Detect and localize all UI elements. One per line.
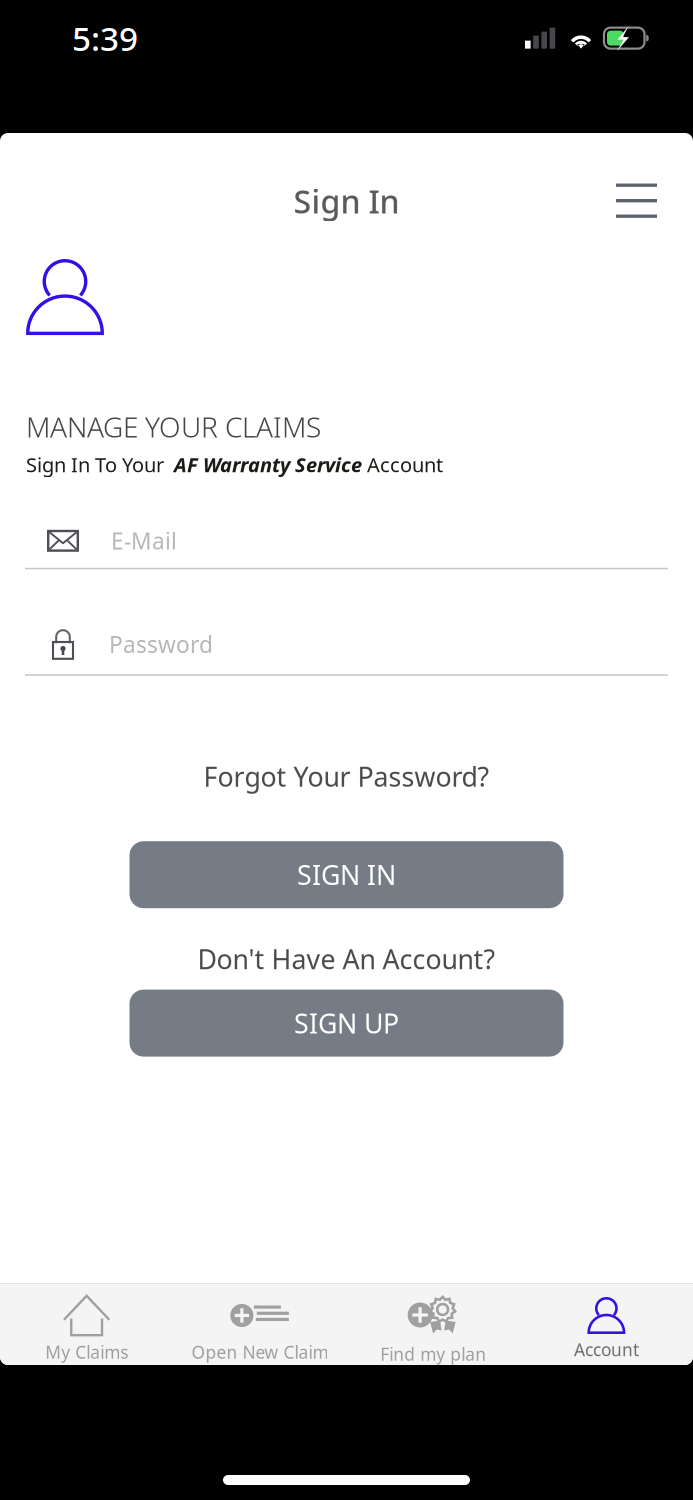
staticText: MANAGE YOUR CLAIMS	[26, 408, 321, 445]
staticText: SIGN IN	[297, 857, 396, 892]
staticText: Sign In To Your AF Warranty Service Acco…	[26, 451, 443, 478]
button[interactable]: My Claims	[0, 1281, 173, 1366]
staticText: E-Mail	[111, 526, 177, 556]
staticText: SIGN UP	[294, 1005, 399, 1041]
staticText: Open New Claim	[191, 1340, 328, 1363]
staticText: Don't Have An Account?	[197, 941, 495, 977]
staticText: Sign In	[293, 180, 399, 222]
button[interactable]: Menu	[616, 173, 693, 228]
staticText: My Claims	[45, 1340, 128, 1363]
staticText: 5:39	[72, 16, 138, 60]
button[interactable]: Forgot Your Password?	[0, 749, 693, 804]
staticText: Account	[574, 1338, 639, 1361]
button[interactable]: SIGN IN	[129, 841, 563, 908]
staticText: Forgot Your Password?	[203, 759, 489, 794]
button[interactable]: Find my plan	[346, 1279, 520, 1368]
button[interactable]: SIGN UP	[129, 990, 563, 1057]
staticText: Find my plan	[380, 1342, 486, 1365]
staticText: Password	[109, 629, 213, 659]
button[interactable]: Open New Claim	[173, 1281, 346, 1366]
button[interactable]: Account	[520, 1284, 693, 1364]
